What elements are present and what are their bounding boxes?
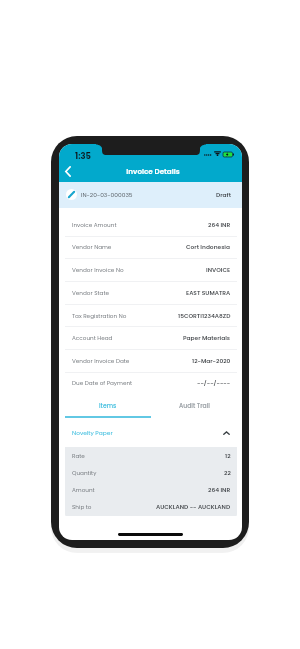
button[interactable]: Amount <box>65 481 237 498</box>
staticText: 22 <box>224 469 231 477</box>
staticText: Draft <box>216 191 231 199</box>
staticText: Due Date of Payment <box>72 379 133 387</box>
other: Collapse <box>222 428 231 437</box>
staticText: 15CORTI1234A8ZD <box>178 312 231 320</box>
staticText: Account Head <box>72 334 113 342</box>
staticText: EAST SUMATRA <box>186 289 231 297</box>
staticText: INVOICE <box>206 266 231 274</box>
button[interactable]: Back <box>60 163 76 179</box>
button[interactable]: Tax Registration No <box>65 304 237 327</box>
button[interactable]: Vendor State <box>65 281 237 304</box>
staticText: Items <box>99 402 117 411</box>
staticText: --/--/---- <box>197 379 231 387</box>
staticText: 12 <box>225 452 231 460</box>
staticText: Amount <box>72 486 95 494</box>
staticText: Quantity <box>72 469 97 477</box>
button[interactable]: IN-20-03-000035 <box>59 182 242 208</box>
button[interactable]: Items <box>65 396 151 416</box>
button[interactable]: Vendor Name <box>65 236 237 258</box>
button[interactable]: Quantity <box>65 464 237 481</box>
button[interactable]: Rate <box>65 447 237 464</box>
staticText: 264 INR <box>208 486 231 494</box>
staticText: Vendor Invoice Date <box>72 357 130 365</box>
staticText: Vendor State <box>72 289 109 297</box>
staticText: Audit Trail <box>179 402 210 411</box>
staticText: Paper Materials <box>183 334 231 342</box>
staticText: Cort Indonesia <box>186 243 231 251</box>
button[interactable]: Audit Trail <box>151 396 237 416</box>
staticText: Vendor Name <box>72 243 112 251</box>
staticText: Vendor Invoice No <box>72 266 124 274</box>
staticText: Ship to <box>72 503 92 511</box>
staticText: AUCKLAND -- AUCKLAND <box>156 503 231 511</box>
staticText: 264 INR <box>208 221 231 229</box>
staticText: 12-Mar-2020 <box>192 357 231 365</box>
staticText: 1:35 <box>75 150 92 162</box>
button[interactable]: Novelty Paper <box>65 418 237 447</box>
staticText: Invoice Amount <box>72 221 117 229</box>
button[interactable]: Ship to <box>65 498 237 515</box>
staticText: Novelty Paper <box>72 429 113 437</box>
button[interactable]: Vendor Invoice No <box>65 258 237 281</box>
button[interactable]: Invoice Amount <box>65 214 237 236</box>
staticText: Tax Registration No <box>72 312 127 320</box>
staticText: IN-20-03-000035 <box>81 191 133 199</box>
button[interactable]: Due Date of Payment <box>65 372 237 392</box>
staticText: Rate <box>72 452 85 460</box>
button[interactable]: Account Head <box>65 326 237 349</box>
staticText: Invoice Details <box>126 166 180 176</box>
button[interactable]: Vendor Invoice Date <box>65 349 237 372</box>
